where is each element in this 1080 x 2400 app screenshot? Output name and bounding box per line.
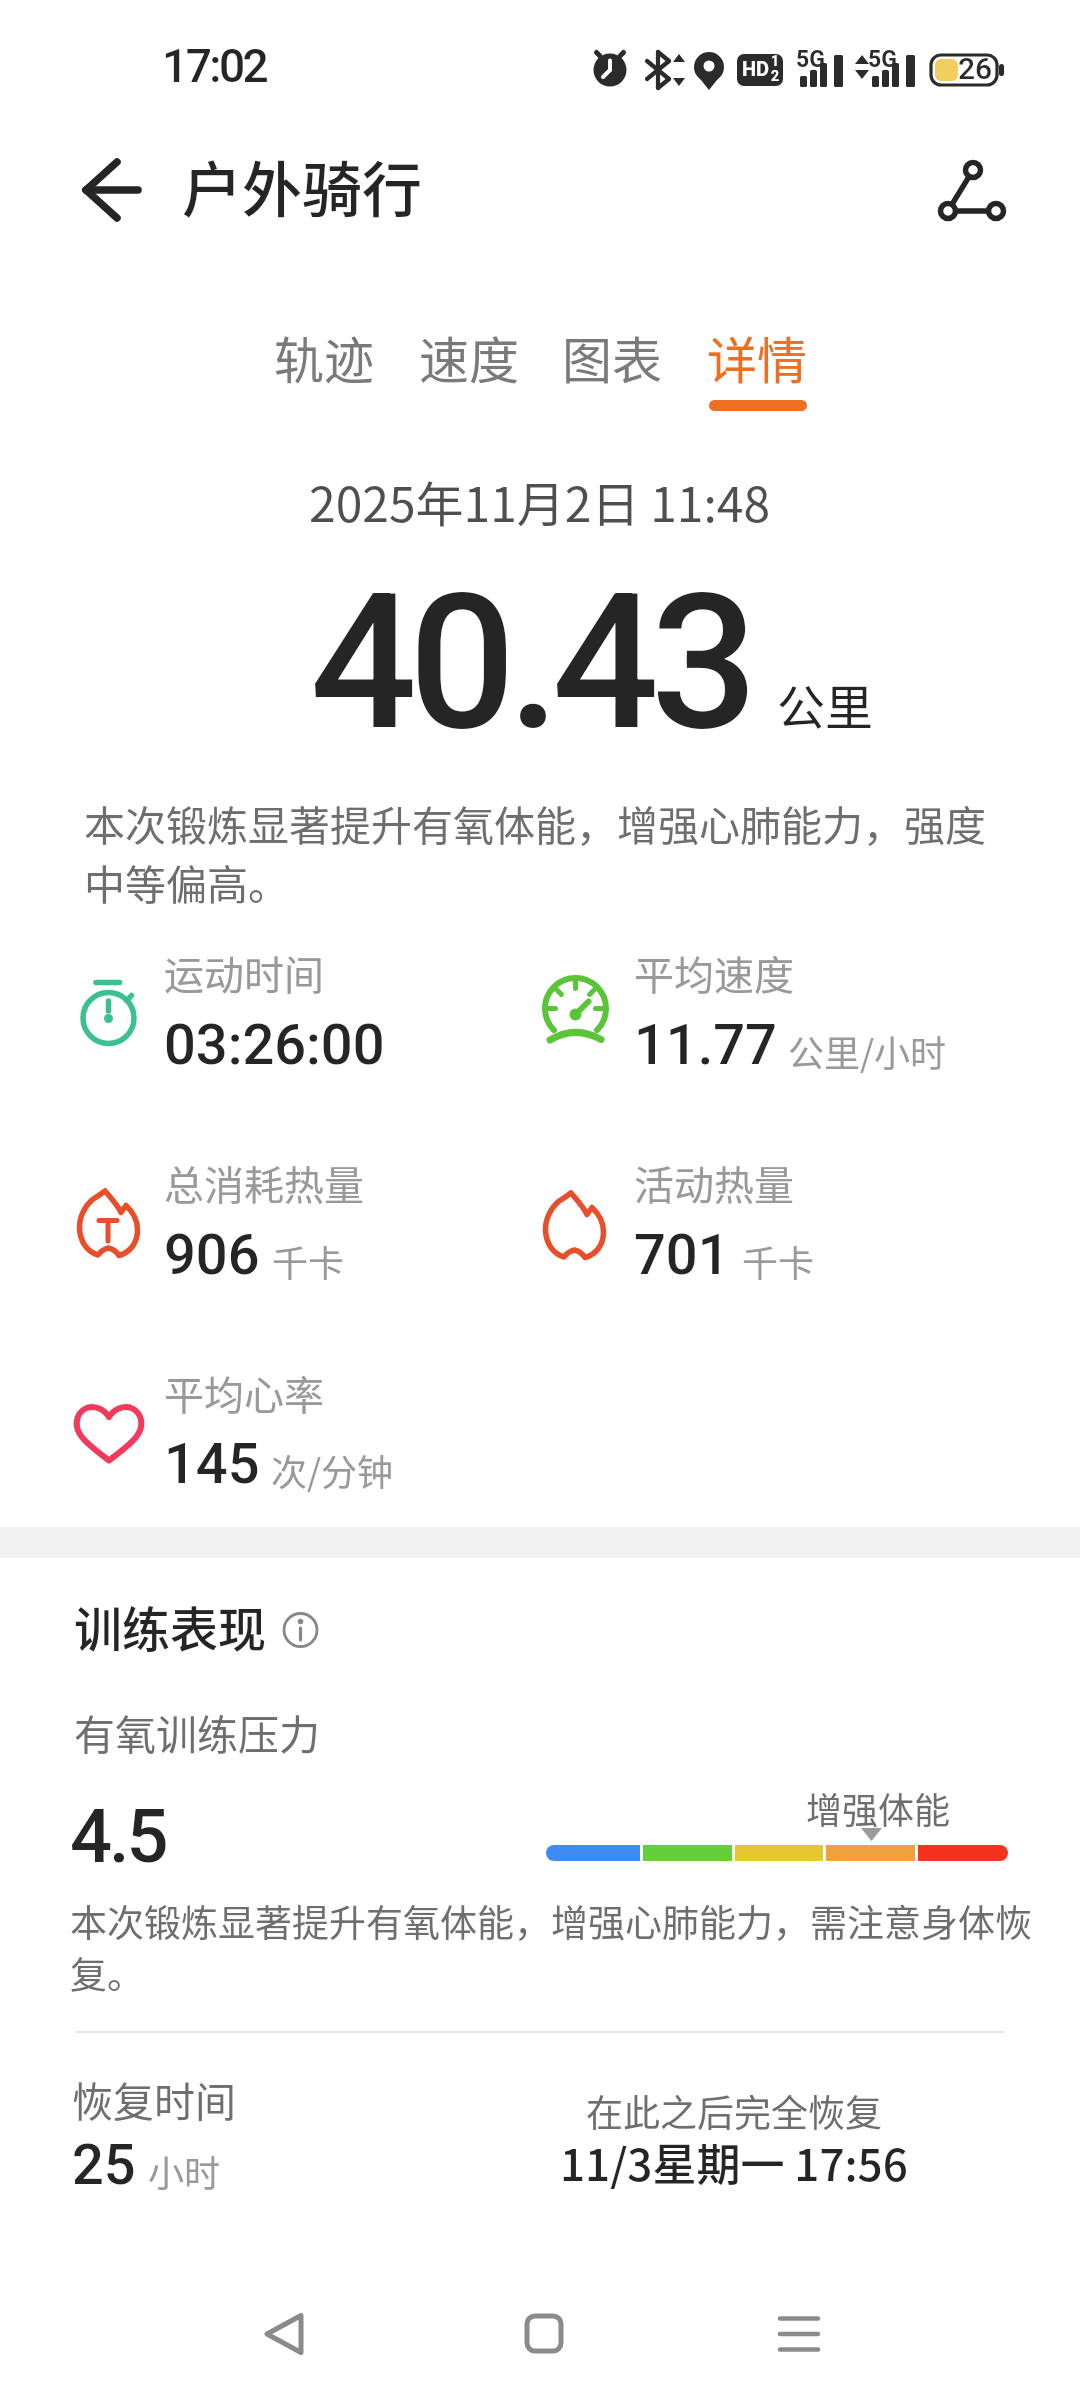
staticText: 906 xyxy=(164,1222,260,1288)
button[interactable]: 速度 xyxy=(417,320,521,394)
staticText: 公里 xyxy=(777,669,874,739)
staticText: 5G xyxy=(868,46,897,73)
staticText: 在此之后完全恢复 xyxy=(586,2084,882,2138)
staticText: 25 xyxy=(72,2132,136,2198)
staticText: 户外骑行 xyxy=(182,142,422,229)
staticText: 本次锻炼显著提升有氧体能，增强心肺能力，强度 xyxy=(84,793,986,852)
button[interactable] xyxy=(760,2299,838,2371)
button[interactable] xyxy=(70,152,150,228)
staticText: 11.77 xyxy=(634,1012,777,1078)
staticText: 复。 xyxy=(70,1946,144,2000)
staticText: 17:02 xyxy=(162,39,267,93)
staticText: 4.5 xyxy=(70,1793,166,1880)
staticText: 轨迹 xyxy=(274,321,374,393)
staticText: 40.43 xyxy=(310,553,750,773)
staticText: 平均心率 xyxy=(164,1364,324,1422)
staticText: 145 xyxy=(164,1431,260,1497)
staticText: 11/3星期一 17:56 xyxy=(560,2130,908,2194)
staticText: 次/分钟 xyxy=(271,1444,394,1496)
staticText: 小时 xyxy=(148,2145,221,2197)
button[interactable]: 轨迹 xyxy=(272,320,376,394)
staticText: 详情 xyxy=(707,321,807,393)
button[interactable] xyxy=(505,2299,583,2371)
staticText: 千卡 xyxy=(272,1235,345,1287)
staticText: 1 xyxy=(771,53,780,69)
staticText: 总消耗热量 xyxy=(164,1154,364,1212)
button[interactable]: 详情 xyxy=(705,320,809,394)
staticText: 平均速度 xyxy=(634,944,794,1002)
button[interactable] xyxy=(245,2299,323,2371)
staticText: 26 xyxy=(958,51,993,86)
staticText: 速度 xyxy=(419,321,519,393)
staticText: 千卡 xyxy=(742,1235,815,1287)
staticText: 增强体能 xyxy=(806,1782,951,1834)
staticText: 701 xyxy=(634,1222,730,1288)
staticText: 2 xyxy=(771,68,780,84)
staticText: 运动时间 xyxy=(164,944,324,1002)
staticText: 图表 xyxy=(562,321,662,393)
staticText: 本次锻炼显著提升有氧体能，增强心肺能力，需注意身体恢 xyxy=(70,1894,1032,1948)
staticText: 有氧训练压力 xyxy=(74,1702,320,1761)
staticText: 中等偏高。 xyxy=(84,852,289,911)
staticText: 公里/小时 xyxy=(788,1025,947,1077)
staticText: 03:26:00 xyxy=(164,1012,385,1078)
button[interactable]: 图表 xyxy=(560,320,664,394)
button[interactable] xyxy=(276,1606,326,1656)
button[interactable] xyxy=(920,140,1015,230)
staticText: 5G xyxy=(796,46,825,73)
staticText: 训练表现 xyxy=(74,1591,267,1661)
staticText: HD xyxy=(742,57,770,80)
staticText: 恢复时间 xyxy=(72,2069,236,2128)
staticText: 2025年11月2日 11:48 xyxy=(309,466,771,536)
staticText: 活动热量 xyxy=(634,1154,794,1212)
